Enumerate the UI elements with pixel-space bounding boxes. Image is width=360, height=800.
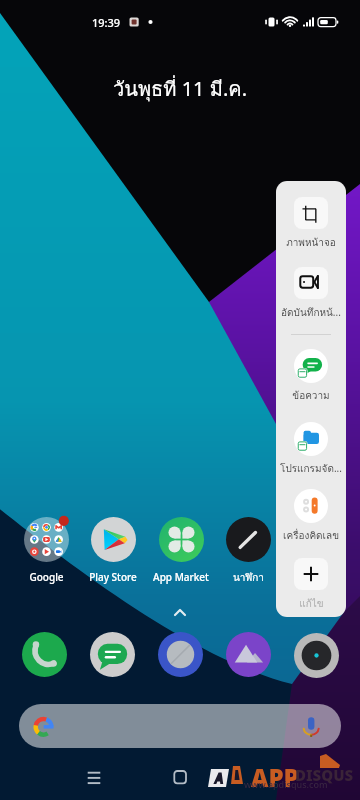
staticText: เครื่องคิดเลข xyxy=(283,528,339,544)
button[interactable]: Browser xyxy=(157,631,203,677)
staticText: แก้ไข xyxy=(299,596,324,612)
staticText: วันพุธที่ 11 มี.ค. xyxy=(113,73,248,105)
button[interactable]: Camera xyxy=(293,632,339,678)
button[interactable]: อัดบันทึกหน้... xyxy=(276,263,346,321)
staticText: 19:39 xyxy=(92,15,121,30)
button[interactable]: ข้อความ xyxy=(276,346,346,404)
button[interactable]: Home xyxy=(166,763,194,791)
staticText: ภาพหน้าจอ xyxy=(286,235,336,251)
staticText: อัดบันทึกหน้... xyxy=(281,305,341,321)
button[interactable]: Gallery xyxy=(225,631,271,677)
button[interactable]: Play Store xyxy=(82,517,144,587)
staticText: www.apdisqus.com xyxy=(244,778,328,790)
staticText: ข้อความ xyxy=(292,388,330,404)
button[interactable]: Search xyxy=(19,704,341,748)
staticText: Google xyxy=(29,570,64,584)
button[interactable]: ภาพหน้าจอ xyxy=(276,193,346,251)
button[interactable]: Messages xyxy=(89,631,135,677)
button[interactable]: Phone xyxy=(21,631,67,677)
staticText: Play Store xyxy=(89,570,137,584)
button[interactable]: โปรแกรมจัด... xyxy=(276,419,346,477)
button[interactable]: App Market xyxy=(150,517,212,587)
staticText: App Market xyxy=(153,570,209,584)
staticText: นาฬิกา xyxy=(233,570,264,586)
button[interactable]: แก้ไข xyxy=(276,554,346,612)
button[interactable]: Open app drawer xyxy=(168,600,192,624)
button[interactable]: Google xyxy=(15,517,77,587)
button[interactable]: Recents xyxy=(80,764,108,792)
button[interactable]: เครื่องคิดเลข xyxy=(276,486,346,544)
button[interactable]: Back xyxy=(252,763,280,791)
button[interactable]: นาฬิกา xyxy=(217,517,279,587)
staticText: DISQUS xyxy=(295,765,354,785)
staticText: APP xyxy=(251,761,299,794)
staticText: โปรแกรมจัด... xyxy=(280,461,342,477)
